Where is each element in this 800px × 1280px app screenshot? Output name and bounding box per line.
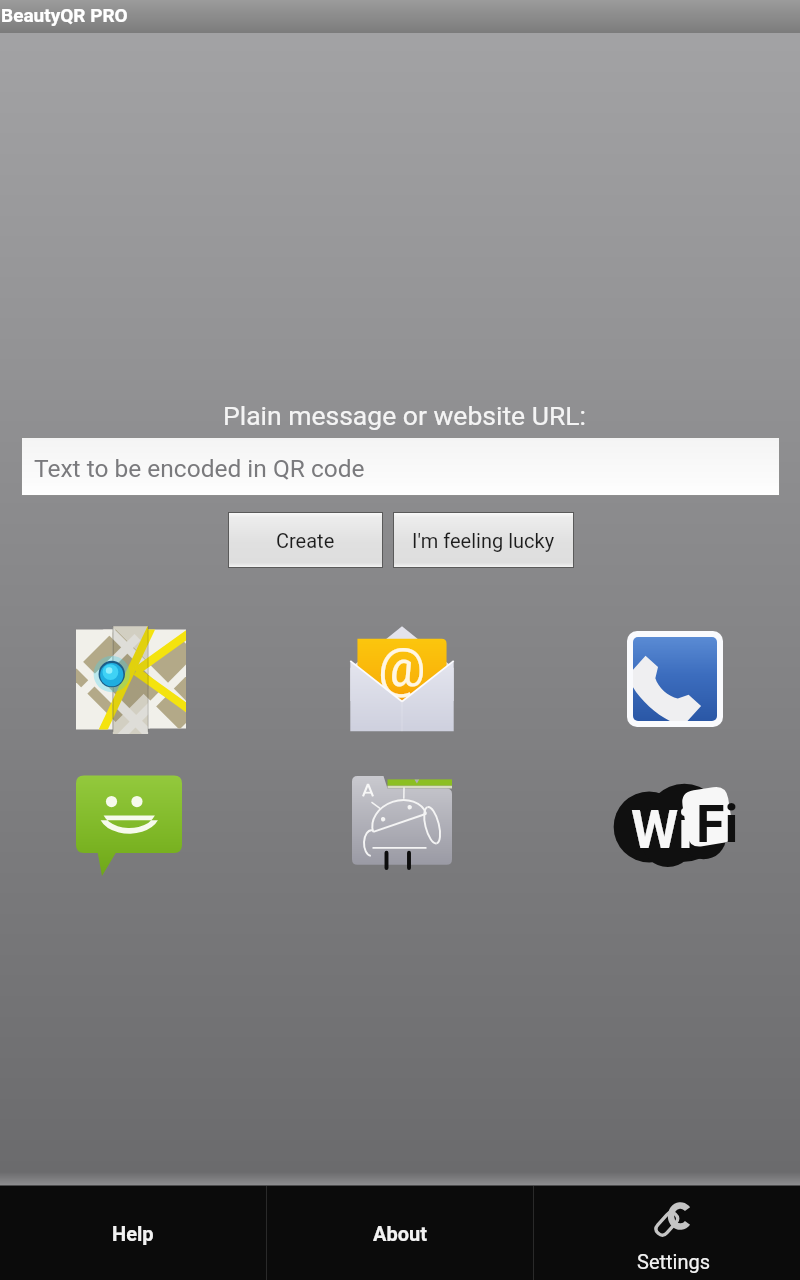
staticText: Settings <box>637 1250 711 1273</box>
button[interactable]: Phone <box>620 624 730 734</box>
button[interactable]: Create <box>229 513 382 567</box>
staticText: Wi <box>631 798 693 861</box>
button[interactable]: Email <box>347 624 457 734</box>
button[interactable]: Maps <box>76 624 186 734</box>
staticText: Plain message or website URL: <box>223 400 586 431</box>
staticText: I'm feeling lucky <box>412 529 555 552</box>
button[interactable]: Messaging <box>74 770 184 880</box>
staticText: Create <box>276 529 335 552</box>
button[interactable]: About <box>267 1186 533 1280</box>
button[interactable]: WiFi <box>620 770 730 880</box>
staticText: BeautyQR PRO <box>1 4 128 26</box>
button[interactable]: Help <box>0 1186 266 1280</box>
staticText: About <box>373 1222 427 1245</box>
button[interactable]: I'm feeling lucky <box>394 513 573 567</box>
staticText: Fi <box>696 794 739 855</box>
button[interactable]: Text to be encoded in QR code <box>22 438 779 495</box>
staticText: @ <box>378 637 426 699</box>
button[interactable]: Settings <box>534 1186 800 1280</box>
button[interactable]: Contacts <box>347 767 457 877</box>
staticText: Text to be encoded in QR code <box>34 454 365 483</box>
staticText: Help <box>112 1222 154 1245</box>
